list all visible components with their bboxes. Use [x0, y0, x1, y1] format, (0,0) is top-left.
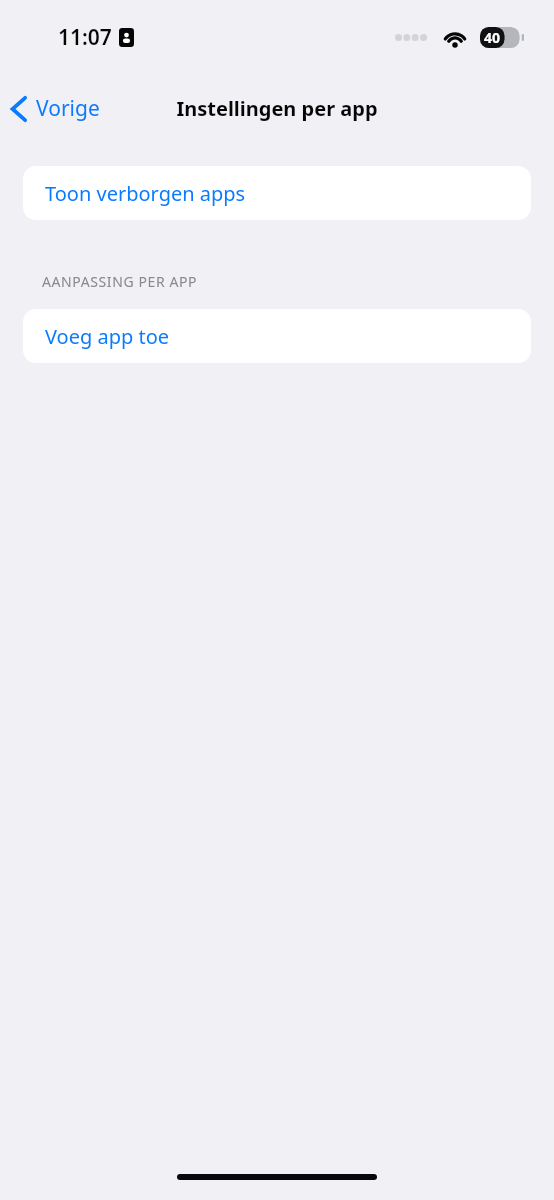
staticText: Voeg app toe [45, 323, 170, 350]
other: Terug [10, 96, 28, 122]
staticText: AANPASSING PER APP [42, 272, 198, 291]
button[interactable]: Toon verborgen apps [23, 166, 531, 220]
staticText: 40 [484, 28, 501, 47]
button[interactable]: Terug [0, 88, 112, 129]
staticText: 11:07 [58, 23, 112, 52]
staticText: Vorige [36, 94, 100, 123]
button[interactable]: Voeg app toe [23, 309, 531, 363]
staticText: Instellingen per app [176, 95, 378, 122]
staticText: Toon verborgen apps [45, 180, 246, 207]
